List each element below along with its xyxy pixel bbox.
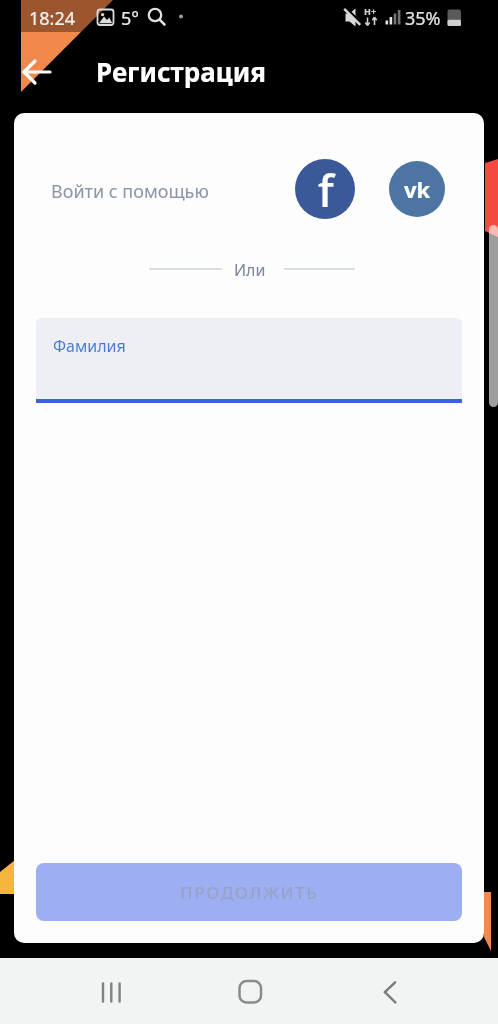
staticText: 18:24 <box>29 6 76 31</box>
staticText: f <box>318 160 334 219</box>
button[interactable]: ПРОДОЛЖИТЬ <box>36 863 462 921</box>
button[interactable] <box>362 964 418 1020</box>
button[interactable] <box>82 964 138 1020</box>
button[interactable]: Фамилия <box>36 318 462 403</box>
button[interactable]: f <box>295 159 355 219</box>
button[interactable]: vk <box>389 161 445 217</box>
button[interactable] <box>12 50 60 94</box>
staticText: ПРОДОЛЖИТЬ <box>180 881 319 904</box>
staticText: 35% <box>405 6 441 31</box>
staticText: Регистрация <box>96 54 266 89</box>
button[interactable] <box>221 964 277 1020</box>
staticText: vk <box>404 174 431 204</box>
staticText: H+ <box>364 5 377 17</box>
staticText: Фамилия <box>53 335 126 357</box>
staticText: Войти с помощью <box>51 179 209 204</box>
staticText: Или <box>234 259 266 281</box>
staticText: 5° <box>121 6 139 31</box>
